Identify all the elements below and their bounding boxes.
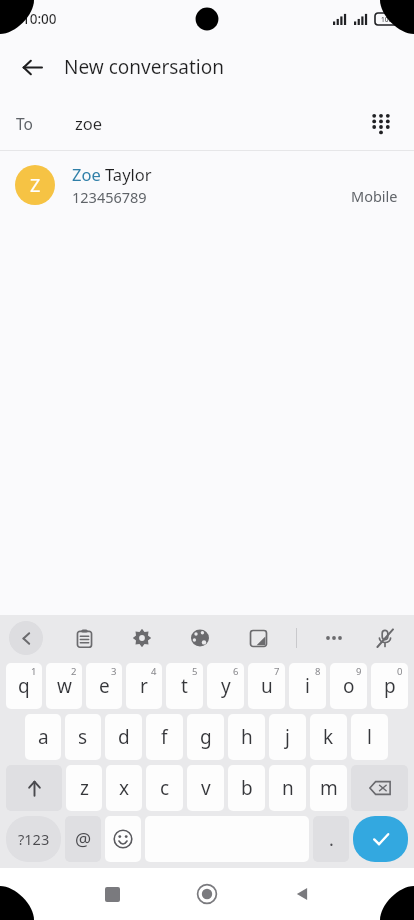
button[interactable]: Period	[313, 816, 349, 862]
button[interactable]: At sign	[65, 816, 101, 862]
staticText: j	[285, 724, 290, 750]
staticText: z	[80, 775, 89, 801]
button[interactable]: Themes	[182, 620, 218, 656]
button[interactable]: s	[65, 714, 101, 760]
staticText: 2	[71, 665, 77, 678]
staticText: c	[160, 775, 170, 801]
staticText: d	[118, 724, 130, 750]
button[interactable]: z	[66, 765, 102, 811]
staticText: l	[367, 724, 372, 750]
staticText: v	[201, 775, 211, 801]
button[interactable]: o	[330, 663, 367, 709]
staticText: .	[329, 827, 334, 852]
button[interactable]: b	[228, 765, 265, 811]
button[interactable]: x	[106, 765, 142, 811]
staticText: p	[384, 673, 396, 699]
button[interactable]: e	[86, 663, 122, 709]
button[interactable]: m	[310, 765, 347, 811]
staticText: n	[282, 775, 294, 801]
staticText: 4	[151, 665, 157, 678]
staticText: g	[200, 724, 212, 750]
button[interactable]: Back	[14, 49, 50, 85]
button[interactable]: r	[126, 663, 162, 709]
button[interactable]: k	[310, 714, 347, 760]
staticText: Mobile	[351, 186, 398, 206]
staticText: 100	[381, 15, 393, 24]
staticText: 5	[192, 665, 198, 678]
staticText: zoe	[75, 112, 103, 134]
staticText: New conversation	[64, 54, 224, 80]
button[interactable]: l	[351, 714, 388, 760]
staticText: 0	[397, 665, 403, 678]
button[interactable]: a	[25, 714, 61, 760]
button[interactable]: g	[187, 714, 224, 760]
button[interactable]: Home	[187, 874, 227, 914]
staticText: Z	[30, 173, 41, 198]
staticText: 1	[31, 665, 37, 678]
staticText: 6	[233, 665, 239, 678]
button[interactable]: w	[46, 663, 82, 709]
button[interactable]: Settings	[124, 620, 160, 656]
button[interactable]: p	[371, 663, 408, 709]
button[interactable]: t	[166, 663, 203, 709]
staticText: 7	[274, 665, 280, 678]
staticText: 9	[356, 665, 362, 678]
button[interactable]: d	[105, 714, 142, 760]
button[interactable]: ?123	[6, 816, 61, 862]
button[interactable]: Dialpad	[360, 102, 402, 144]
button[interactable]: Recents	[92, 874, 132, 914]
button[interactable]: Send	[353, 816, 408, 862]
staticText: m	[320, 775, 338, 801]
button[interactable]: Shift	[6, 765, 62, 811]
staticText: t	[181, 673, 188, 699]
button[interactable]: u	[248, 663, 285, 709]
staticText: 123456789	[72, 187, 147, 207]
staticText: @	[75, 827, 92, 852]
button[interactable]: Collapse keyboard toolbar	[9, 621, 43, 655]
button[interactable]: Emoji	[105, 816, 141, 862]
button[interactable]: Clipboard	[66, 620, 102, 656]
button[interactable]: More options	[316, 620, 352, 656]
button[interactable]: f	[146, 714, 183, 760]
staticText: x	[119, 775, 130, 801]
staticText: r	[140, 673, 148, 699]
button[interactable]: Z	[0, 151, 414, 219]
staticText: 8	[315, 665, 321, 678]
staticText: f	[161, 724, 168, 750]
button[interactable]: h	[228, 714, 265, 760]
staticText: i	[305, 673, 310, 699]
staticText: k	[323, 724, 334, 750]
button[interactable]: c	[146, 765, 183, 811]
staticText: u	[261, 673, 273, 699]
button[interactable]: q	[6, 663, 42, 709]
staticText: q	[18, 673, 30, 699]
staticText: y	[221, 673, 231, 699]
button[interactable]: Backspace	[351, 765, 408, 811]
staticText: e	[99, 673, 110, 699]
staticText: h	[241, 724, 253, 750]
staticText: Zoe Taylor	[72, 163, 152, 185]
button[interactable]: v	[187, 765, 224, 811]
staticText: o	[343, 673, 355, 699]
staticText: w	[57, 673, 72, 699]
staticText: To	[16, 113, 33, 134]
staticText: ?123	[18, 829, 50, 849]
staticText: 3	[111, 665, 117, 678]
button[interactable]: Back	[282, 874, 322, 914]
button[interactable]: j	[269, 714, 306, 760]
button[interactable]: Voice input off	[367, 620, 403, 656]
button[interactable]: i	[289, 663, 326, 709]
staticText: s	[78, 724, 88, 750]
button[interactable]: n	[269, 765, 306, 811]
button[interactable]: y	[207, 663, 244, 709]
staticText: a	[38, 724, 49, 750]
button[interactable]: Resize keyboard	[240, 620, 276, 656]
staticText: 10:00	[22, 10, 57, 28]
staticText: b	[241, 775, 253, 801]
